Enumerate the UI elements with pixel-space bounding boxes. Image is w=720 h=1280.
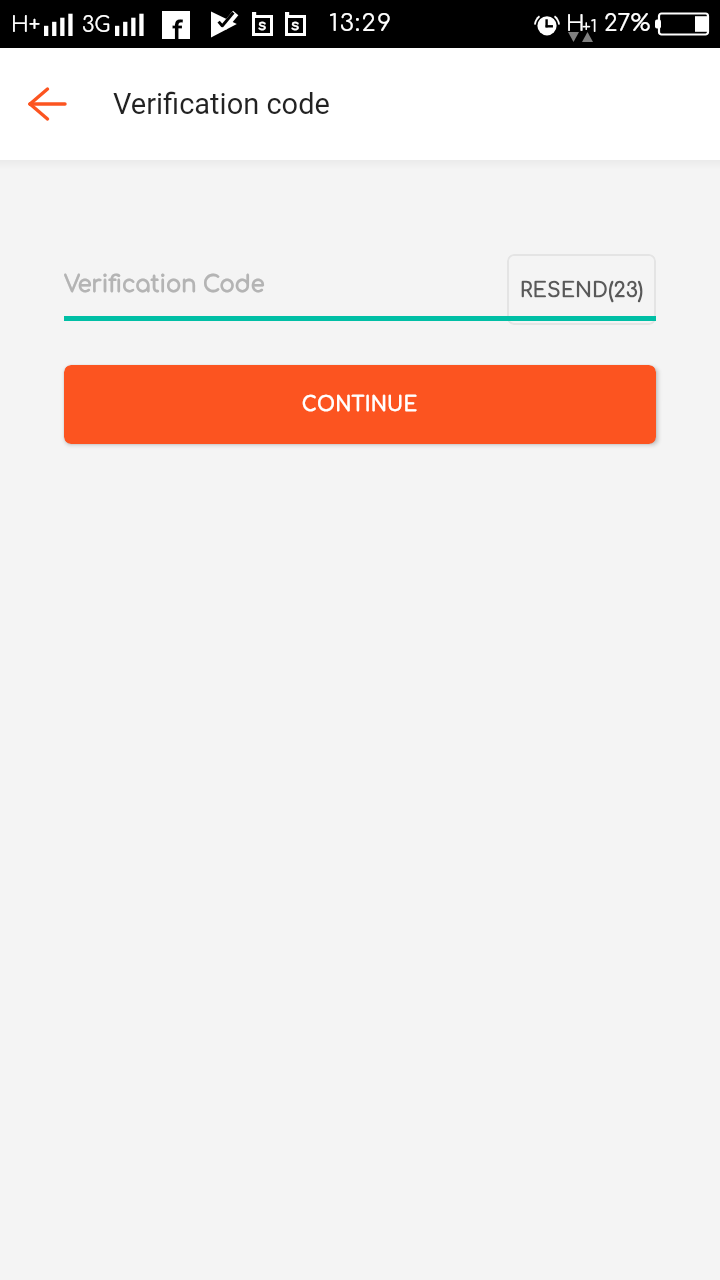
button[interactable]: RESEND(23) xyxy=(507,254,656,325)
staticText: H+ xyxy=(11,13,41,36)
staticText: Verification code xyxy=(113,87,330,121)
staticText: f xyxy=(172,14,183,42)
button[interactable]: CONTINUE xyxy=(64,365,656,444)
staticText: s xyxy=(258,17,267,34)
staticText: H xyxy=(566,12,585,37)
button[interactable]: Back xyxy=(15,72,79,136)
staticText: s xyxy=(291,17,300,34)
staticText: Verification Code xyxy=(64,272,265,297)
staticText: 3G xyxy=(82,13,111,36)
staticText: 27% xyxy=(604,11,651,37)
staticText: 13:29 xyxy=(329,10,393,37)
staticText: +1 xyxy=(582,18,597,36)
staticText: RESEND(23) xyxy=(520,279,644,301)
staticText: CONTINUE xyxy=(302,394,418,415)
